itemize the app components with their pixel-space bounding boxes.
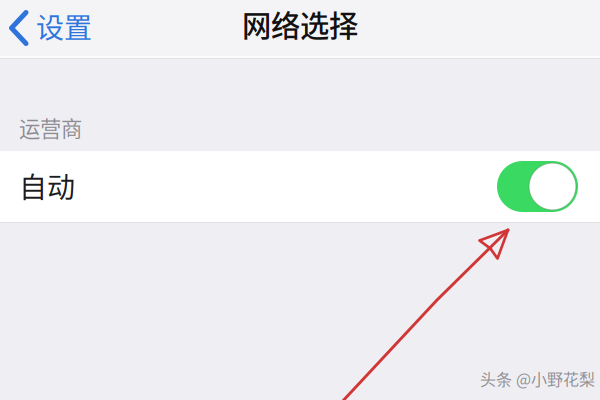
staticText: 自动 [19,165,75,206]
button[interactable]: 自动 [497,161,578,212]
staticText: 头条 @小野花梨 [480,367,595,390]
staticText: 网络选择 [242,3,358,45]
staticText: 设置 [36,6,92,46]
staticText: 运营商 [19,112,82,143]
button[interactable]: 设置 [0,0,104,56]
